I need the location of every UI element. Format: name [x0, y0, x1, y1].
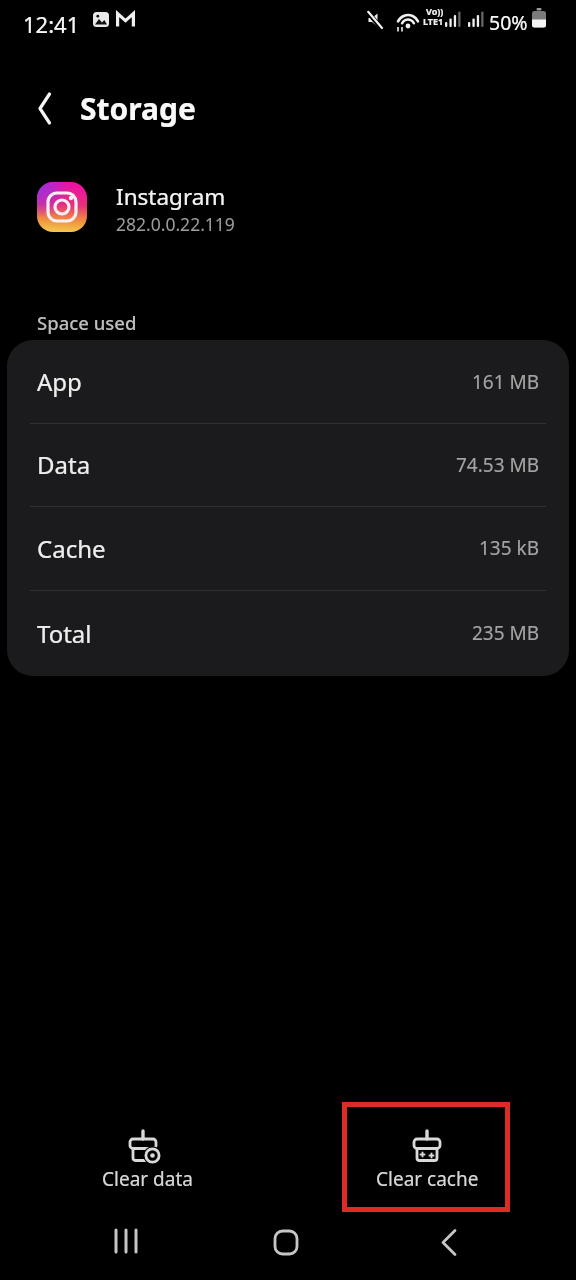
- button[interactable]: Data: [7, 423, 569, 506]
- staticText: Space used: [37, 310, 137, 335]
- button[interactable]: Total: [7, 590, 569, 676]
- staticText: Total: [37, 617, 92, 650]
- staticText: Storage: [80, 88, 196, 129]
- staticText: Clear data: [102, 1166, 193, 1192]
- staticText: 235 MB: [472, 620, 540, 646]
- staticText: Data: [37, 448, 91, 481]
- staticText: Vo)): [426, 5, 444, 17]
- staticText: 74.53 MB: [456, 452, 540, 478]
- button[interactable]: [418, 1212, 478, 1272]
- staticText: LTE1: [423, 15, 444, 27]
- staticText: 12:41: [23, 9, 80, 39]
- button[interactable]: [256, 1212, 316, 1272]
- staticText: 161 MB: [472, 369, 540, 395]
- staticText: Instagram: [116, 181, 226, 212]
- button[interactable]: Clear cache: [357, 1118, 497, 1196]
- staticText: Clear cache: [376, 1166, 479, 1192]
- staticText: 282.0.0.22.119: [116, 212, 235, 236]
- button[interactable]: App: [7, 340, 569, 423]
- staticText: 135 kB: [479, 535, 540, 561]
- staticText: App: [37, 365, 82, 398]
- staticText: 50%: [489, 9, 528, 36]
- button[interactable]: Cache: [7, 506, 569, 590]
- staticText: Cache: [37, 532, 106, 565]
- button[interactable]: [24, 84, 72, 132]
- button[interactable]: [97, 1212, 157, 1272]
- button[interactable]: Clear data: [77, 1118, 217, 1196]
